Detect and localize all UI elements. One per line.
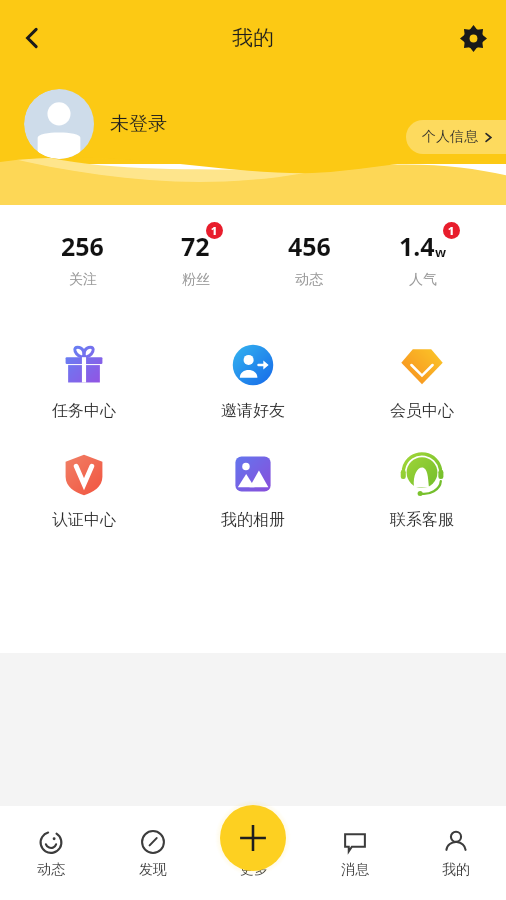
- button[interactable]: 动态: [0, 828, 102, 900]
- staticText: 我的相册: [221, 510, 285, 530]
- staticText: 1.4: [399, 229, 435, 263]
- staticText: 邀请好友: [221, 401, 285, 421]
- staticText: 我的: [232, 25, 274, 51]
- staticText: 消息: [341, 861, 369, 879]
- button[interactable]: Settings: [450, 15, 496, 61]
- staticText: 我的: [442, 861, 470, 879]
- staticText: w: [435, 243, 447, 261]
- button[interactable]: 72: [139, 205, 252, 313]
- button[interactable]: 任务中心: [0, 340, 168, 421]
- staticText: 1: [211, 223, 218, 238]
- button[interactable]: 更多: [220, 805, 286, 871]
- button[interactable]: 256: [26, 205, 139, 313]
- staticText: 未登录: [110, 112, 167, 136]
- button[interactable]: 个人信息: [406, 120, 506, 154]
- button[interactable]: Back: [8, 14, 56, 62]
- button[interactable]: 发现: [102, 828, 203, 900]
- staticText: 动态: [37, 861, 65, 879]
- button[interactable]: 我的: [405, 828, 506, 900]
- staticText: 72: [181, 229, 210, 263]
- staticText: 456: [288, 229, 331, 263]
- staticText: 粉丝: [182, 271, 210, 289]
- staticText: 更多: [240, 861, 268, 879]
- button[interactable]: 联系客服: [337, 449, 506, 530]
- button[interactable]: 消息: [304, 828, 405, 900]
- staticText: 发现: [139, 861, 167, 879]
- staticText: 个人信息: [422, 128, 478, 146]
- staticText: 认证中心: [52, 510, 116, 530]
- button[interactable]: 456: [252, 205, 366, 313]
- button[interactable]: 会员中心: [337, 340, 506, 421]
- button[interactable]: 更多: [203, 828, 304, 900]
- staticText: 动态: [295, 271, 323, 289]
- staticText: 1: [448, 223, 455, 238]
- staticText: 联系客服: [390, 510, 454, 530]
- button[interactable]: 邀请好友: [168, 340, 337, 421]
- staticText: 关注: [69, 271, 97, 289]
- staticText: 256: [61, 229, 104, 263]
- staticText: 会员中心: [390, 401, 454, 421]
- staticText: 人气: [409, 271, 437, 289]
- button[interactable]: 未登录: [24, 89, 177, 159]
- button[interactable]: 我的相册: [168, 449, 337, 530]
- button[interactable]: 1.4: [366, 205, 480, 313]
- button[interactable]: 认证中心: [0, 449, 168, 530]
- staticText: 任务中心: [52, 401, 116, 421]
